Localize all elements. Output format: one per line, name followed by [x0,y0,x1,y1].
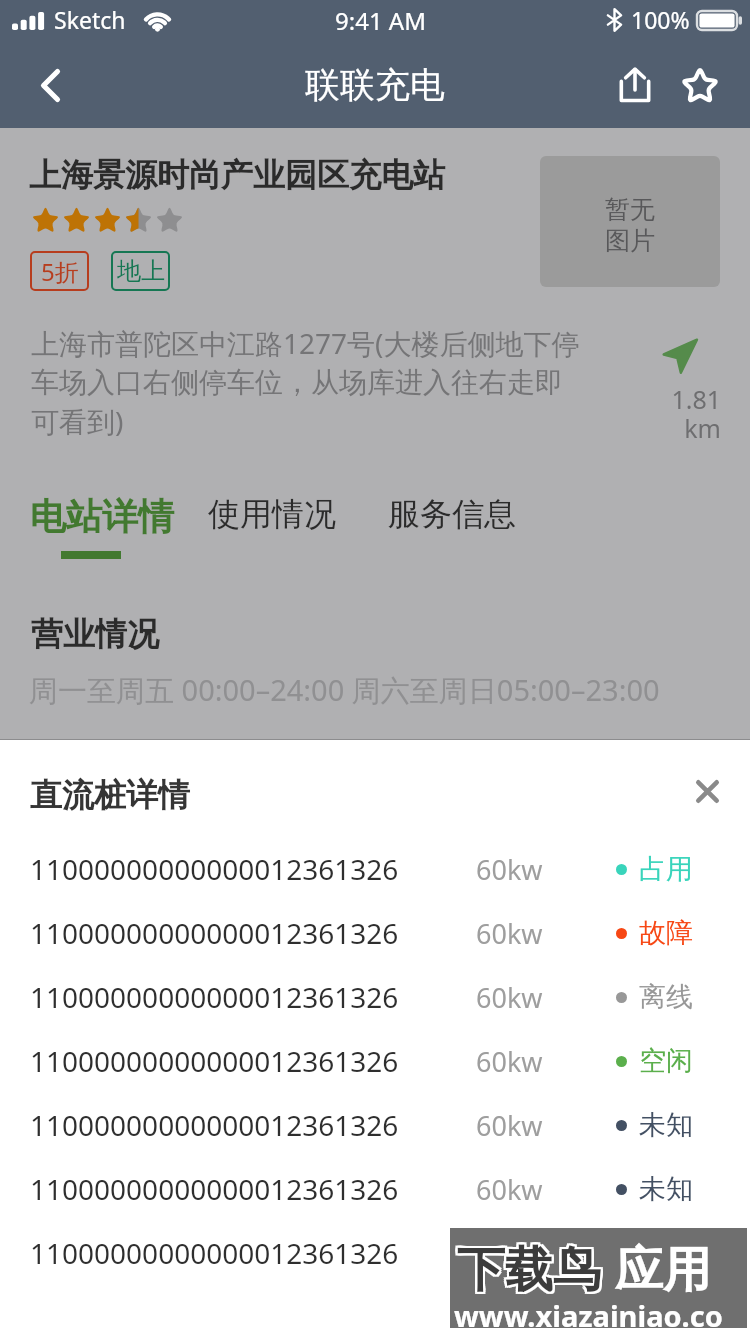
button[interactable]: 11000000000000012361326 [0,901,750,965]
button[interactable]: Favorite [665,42,735,128]
button[interactable]: 11000000000000012361326 [0,1157,750,1221]
staticText: 下载鸟 [457,1240,601,1300]
staticText: 下载鸟 [459,1240,603,1300]
button[interactable]: 11000000000000012361326 [0,1029,750,1093]
staticText: 下载鸟 [457,1238,601,1298]
staticText: 电站详情 [30,494,174,539]
staticText: Sketch [54,4,126,35]
staticText: 下载鸟 [459,1238,603,1298]
staticText: 60kw [476,979,543,1016]
button[interactable]: 11000000000000012361326 [0,1093,750,1157]
staticText: 60kw [476,1171,543,1208]
staticText: 11000000000000012361326 [30,850,399,888]
staticText: 5折 [41,255,79,288]
staticText: 未知 [639,1172,693,1206]
staticText: 地上 [117,256,165,286]
staticText: 11000000000000012361326 [30,1234,399,1272]
staticText: 未知 [639,1108,693,1142]
staticText: 暂无 图片 [605,194,655,257]
button[interactable]: 11000000000000012361326 [0,837,750,901]
button[interactable]: 服务信息 [388,494,516,534]
button[interactable]: Share [600,42,670,128]
button[interactable]: 地上 [111,251,170,291]
staticText: 服务信息 [388,494,516,534]
staticText: 60kw [476,1043,543,1080]
staticText: 60kw [476,851,543,888]
staticText: 直流桩详情 [30,775,190,815]
staticText: 占用 [639,852,693,886]
staticText: 60kw [476,1107,543,1144]
staticText: 营业情况 [31,614,159,654]
staticText: 离线 [639,980,693,1014]
staticText: 故障 [639,916,693,950]
staticText: 100% [631,4,690,35]
staticText: 下载鸟 [455,1240,599,1300]
staticText: 周一至周五 00:00–24:00 周六至周日05:00–23:00 [29,670,660,710]
staticText: 9:41 AM [335,4,426,37]
button[interactable]: 使用情况 [208,494,336,534]
staticText: 上海市普陀区中江路1277号(大楼后侧地下停 车场入口右侧停车位，从场库进入往右… [31,324,631,440]
staticText: 11000000000000012361326 [30,1106,399,1144]
staticText: 下载鸟 [459,1242,603,1302]
staticText: 11000000000000012361326 [30,1042,399,1080]
staticText: 11000000000000012361326 [30,914,399,952]
staticText: 空闲 [639,1044,693,1078]
button[interactable]: 11000000000000012361326 [0,1221,750,1285]
staticText: 60kw [476,915,543,952]
button[interactable]: Close [673,757,741,825]
staticText: 上海景源时尚产业园区充电站 [29,155,445,195]
staticText: 60kw [476,1235,543,1272]
staticText: 1.81 km [621,382,721,445]
staticText: 使用情况 [208,494,336,534]
staticText: www.xiazainiao.com [454,1296,750,1334]
staticText: 下载鸟 [455,1242,599,1302]
staticText: 下载鸟 [457,1242,601,1302]
button[interactable]: 5折 [30,251,89,291]
button[interactable]: 电站详情 [30,494,174,539]
staticText: 11000000000000012361326 [30,978,399,1016]
button[interactable]: 11000000000000012361326 [0,965,750,1029]
staticText: 未知 [639,1236,693,1270]
button[interactable]: Back [0,42,100,128]
staticText: 联联充电 [305,63,445,107]
staticText: 11000000000000012361326 [30,1170,399,1208]
staticText: 应用 [615,1240,711,1300]
staticText: 下载鸟 [455,1238,599,1298]
